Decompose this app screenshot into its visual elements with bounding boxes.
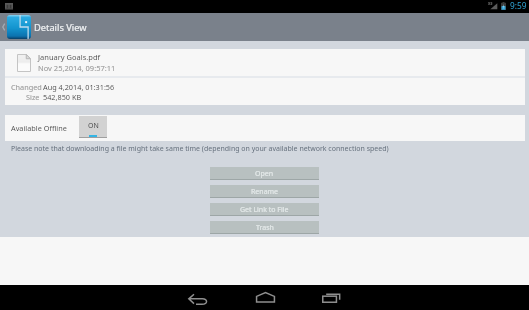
staticText: Size [26, 92, 40, 102]
button[interactable]: January Goals.pdf [5, 49, 525, 76]
staticText: January Goals.pdf [38, 52, 101, 62]
staticText: 542,850 KB [43, 92, 82, 102]
button[interactable]: ON [79, 116, 107, 138]
button[interactable]: Back [0, 16, 7, 38]
staticText: Get Link to File [240, 205, 289, 215]
button[interactable]: Open [210, 167, 319, 180]
staticText: Details View [34, 21, 87, 34]
button[interactable]: Get Link to File [210, 203, 319, 216]
staticText: Changed [11, 82, 42, 92]
staticText: Open [255, 169, 274, 179]
button[interactable]: Recent apps [307, 285, 355, 310]
button[interactable]: Home [241, 285, 289, 310]
staticText: Rename [251, 187, 279, 197]
staticText: ON [88, 121, 99, 131]
button[interactable]: Rename [210, 185, 319, 198]
staticText: Aug 4,2014, 01:31:56 [43, 82, 115, 92]
staticText: Available Offline [11, 123, 67, 133]
button[interactable]: Trash [210, 221, 319, 234]
staticText: Nov 25,2014, 09:57:11 [38, 63, 116, 73]
staticText: Please note that downloading a file migh… [11, 144, 389, 154]
staticText: Trash [256, 223, 274, 233]
staticText: 9:59 [510, 0, 527, 11]
button[interactable]: Back [174, 285, 222, 310]
